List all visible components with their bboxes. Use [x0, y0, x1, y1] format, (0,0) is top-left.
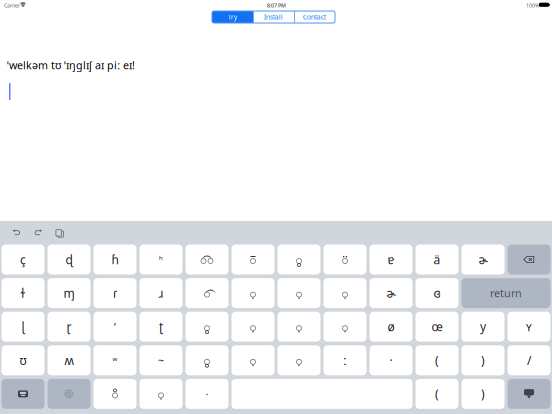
button[interactable]: Diacritic	[185, 278, 228, 308]
staticText: ɱ	[63, 285, 74, 301]
button[interactable]: Diacritic	[231, 244, 274, 274]
button[interactable]: Diacritic	[185, 244, 228, 274]
staticText: ɚ	[386, 285, 395, 301]
staticText: œ	[431, 319, 442, 335]
button[interactable]: ɹ	[139, 278, 182, 308]
button[interactable]: ɖ	[47, 244, 90, 274]
button[interactable]: Diacritic	[185, 312, 228, 342]
staticText: Contact	[303, 13, 326, 21]
staticText: ɦ	[111, 251, 118, 267]
button[interactable]: Diacritic	[139, 379, 182, 409]
staticText: (	[435, 386, 439, 402]
button[interactable]: ·	[369, 345, 412, 375]
button[interactable]: Diacritic	[185, 379, 228, 409]
button[interactable]: ʼ	[93, 312, 136, 342]
button[interactable]: (	[415, 345, 458, 375]
staticText: ɚ	[478, 251, 487, 267]
button[interactable]: Undo	[8, 225, 25, 240]
staticText: ɭ	[21, 319, 24, 335]
staticText: Install	[264, 13, 283, 21]
staticText: ɞ	[433, 285, 440, 301]
button[interactable]: ɱ	[47, 278, 90, 308]
button[interactable]: )	[461, 345, 504, 375]
button[interactable]: return	[461, 278, 550, 308]
staticText: 100%	[526, 2, 539, 9]
staticText: ː	[343, 352, 347, 368]
staticText: ·	[389, 352, 392, 368]
button[interactable]: ɚ	[461, 244, 504, 274]
button[interactable]: Hide keyboard	[507, 379, 550, 409]
button[interactable]: ɦ	[93, 244, 136, 274]
button[interactable]: ɽ	[47, 312, 90, 342]
button[interactable]: ɞ	[415, 278, 458, 308]
button[interactable]: Install	[253, 11, 294, 23]
button[interactable]: ʈ	[139, 312, 182, 342]
button[interactable]: ʊ	[1, 345, 44, 375]
staticText: Carrier	[4, 2, 20, 9]
button[interactable]: ʷ	[93, 345, 136, 375]
button[interactable]: Redo	[29, 225, 46, 240]
button[interactable]: Delete	[507, 244, 550, 274]
button[interactable]: Diacritic	[231, 345, 274, 375]
button[interactable]: Try	[212, 11, 253, 23]
button[interactable]: Switch keyboard	[1, 379, 44, 409]
staticText: ʏ	[526, 319, 532, 335]
staticText: (	[435, 352, 439, 368]
staticText: ʷ	[112, 354, 117, 366]
staticText: ç	[20, 251, 26, 267]
staticText: ʊ	[19, 352, 26, 368]
staticText: ɫ	[20, 285, 25, 301]
staticText: ʈ	[159, 319, 163, 335]
button[interactable]: Copy	[52, 225, 68, 241]
staticText: ʍ	[64, 352, 73, 368]
button[interactable]: Contact	[294, 11, 335, 23]
staticText: ɹ	[158, 285, 163, 301]
button[interactable]: Diacritic	[277, 345, 320, 375]
button[interactable]: /	[507, 345, 550, 375]
button[interactable]: Diacritic	[277, 244, 320, 274]
staticText: return	[490, 286, 522, 300]
button[interactable]: ʏ	[507, 312, 550, 342]
button[interactable]: ø	[369, 312, 412, 342]
button[interactable]: ç	[1, 244, 44, 274]
button[interactable]: Diacritic	[277, 312, 320, 342]
button[interactable]: Next language	[47, 379, 90, 409]
button[interactable]: ä	[415, 244, 458, 274]
button[interactable]: ɚ	[369, 278, 412, 308]
button[interactable]: ɫ	[1, 278, 44, 308]
button[interactable]: Diacritic	[93, 379, 136, 409]
button[interactable]: ɾ	[93, 278, 136, 308]
button[interactable]: ː	[323, 345, 366, 375]
button[interactable]: œ	[415, 312, 458, 342]
staticText: ʰ	[159, 253, 163, 266]
button[interactable]: Diacritic	[323, 244, 366, 274]
staticText: ɐ	[387, 251, 394, 267]
staticText: Try	[228, 13, 237, 21]
staticText: )	[481, 352, 485, 368]
button[interactable]: ~	[139, 345, 182, 375]
staticText: ɽ	[66, 319, 71, 335]
button[interactable]: (	[415, 379, 458, 409]
staticText: y	[480, 319, 486, 335]
staticText: ɖ	[65, 251, 72, 267]
button[interactable]: Diacritic	[231, 278, 274, 308]
staticText: 8:07 PM	[267, 2, 286, 9]
button[interactable]: ʍ	[47, 345, 90, 375]
button[interactable]: Diacritic	[323, 312, 366, 342]
button[interactable]: )	[461, 379, 504, 409]
staticText: ø	[387, 319, 394, 335]
button[interactable]: ʰ	[139, 244, 182, 274]
button[interactable]: Diacritic	[277, 278, 320, 308]
button[interactable]: Diacritic	[323, 278, 366, 308]
staticText: /	[527, 352, 531, 368]
button[interactable]: ɭ	[1, 312, 44, 342]
button[interactable]: y	[461, 312, 504, 342]
staticText: ˈwelkəm tʊ ˈɪŋglɪʃ aɪ piː eɪ!	[7, 58, 135, 72]
button[interactable]: ɐ	[369, 244, 412, 274]
staticText: )	[481, 386, 485, 402]
staticText: ʼ	[114, 320, 116, 334]
staticText: ~	[158, 353, 164, 367]
button[interactable]: Diacritic	[185, 345, 228, 375]
button[interactable]: Diacritic	[231, 312, 274, 342]
